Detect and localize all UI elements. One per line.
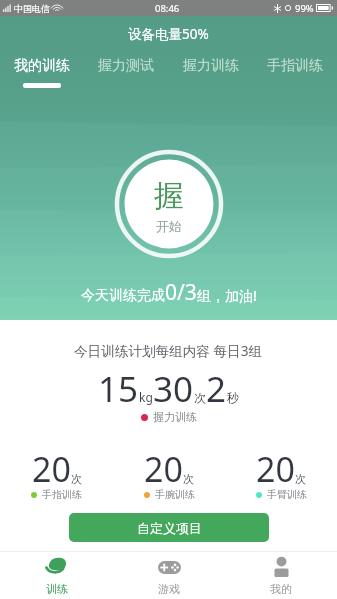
button[interactable]: 手指训练 (259, 57, 331, 83)
staticText: 自定义项目 (137, 520, 202, 536)
staticText: 30 (153, 365, 194, 413)
button[interactable]: 握力测试 (90, 57, 162, 83)
button[interactable]: 20 (225, 446, 337, 500)
staticText: 次 (183, 472, 194, 486)
staticText: 0/3 (165, 278, 197, 307)
button[interactable]: 握力训练 (175, 57, 247, 83)
staticText: 08:46 (155, 2, 180, 15)
button[interactable]: 游戏 (113, 552, 225, 599)
button[interactable]: 我的 (225, 552, 337, 599)
staticText: kg (139, 389, 153, 405)
staticText: 99% (295, 2, 314, 15)
staticText: 次 (295, 472, 306, 486)
staticText: 15 (98, 365, 139, 413)
staticText: 手指训练 (42, 488, 82, 501)
button[interactable]: 20 (0, 446, 113, 500)
staticText: 手指训练 (267, 57, 323, 75)
staticText: 握力测试 (98, 57, 154, 75)
staticText: 训练 (46, 582, 68, 596)
staticText: 中国电信 (14, 3, 50, 14)
staticText: 次 (71, 472, 82, 486)
staticText: 2 (206, 365, 227, 413)
staticText: 开始 (156, 218, 182, 234)
staticText: 握力训练 (153, 410, 197, 424)
staticText: 今天训练完成 (81, 287, 165, 305)
staticText: 游戏 (158, 582, 180, 596)
staticText: 秒 (227, 390, 239, 405)
staticText: 20 (32, 446, 71, 492)
button[interactable]: 自定义项目 (69, 513, 269, 542)
button[interactable]: 我的训练 (6, 57, 78, 88)
staticText: 我的训练 (14, 57, 70, 75)
staticText: 握 (154, 177, 184, 215)
staticText: 握力训练 (183, 57, 239, 75)
staticText: 20 (144, 446, 183, 492)
button[interactable]: 20 (113, 446, 225, 500)
staticText: 组，加油! (197, 286, 257, 305)
staticText: 手臂训练 (267, 488, 307, 501)
staticText: 设备电量50% (128, 25, 209, 43)
staticText: 今日训练计划每组内容 每日3组 (74, 341, 263, 360)
button[interactable]: 握 (114, 149, 224, 259)
staticText: 手腕训练 (155, 488, 195, 501)
staticText: 次 (194, 390, 206, 405)
staticText: 我的 (270, 582, 292, 596)
button[interactable]: 训练 (0, 552, 113, 599)
staticText: 20 (256, 446, 295, 492)
